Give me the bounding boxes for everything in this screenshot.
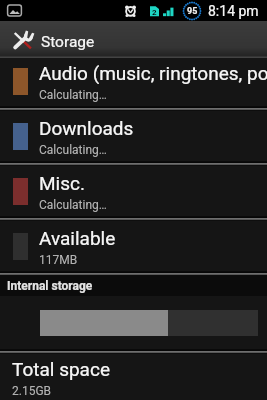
staticText: Calculating… <box>39 88 107 102</box>
other: Screenshot captured <box>7 4 22 17</box>
staticText: 2.15GB <box>12 384 52 398</box>
staticText: 95 <box>187 6 198 17</box>
staticText: Misc. <box>39 172 85 194</box>
button[interactable]: Misc. <box>0 164 267 219</box>
other: Settings <box>12 30 33 50</box>
button[interactable]: Available <box>0 219 267 274</box>
staticText: Calculating… <box>39 198 107 212</box>
staticText: 117MB <box>39 253 78 267</box>
staticText: Total space <box>12 358 110 380</box>
staticText: Available <box>39 227 116 249</box>
staticText: Internal storage <box>7 279 93 293</box>
button[interactable]: Downloads <box>0 109 267 164</box>
staticText: 2 <box>152 8 157 17</box>
staticText: 8:14 pm <box>208 3 259 19</box>
button[interactable]: Audio (music, ringtones, podcasts, etc.) <box>0 54 267 109</box>
staticText: Downloads <box>39 117 134 139</box>
button[interactable]: Total space <box>0 352 267 400</box>
button[interactable]: Settings <box>0 21 267 58</box>
button[interactable] <box>40 310 258 336</box>
staticText: Audio (music, ringtones, podcasts, etc.) <box>39 62 267 84</box>
staticText: Storage <box>41 33 95 51</box>
staticText: Calculating… <box>39 143 107 157</box>
